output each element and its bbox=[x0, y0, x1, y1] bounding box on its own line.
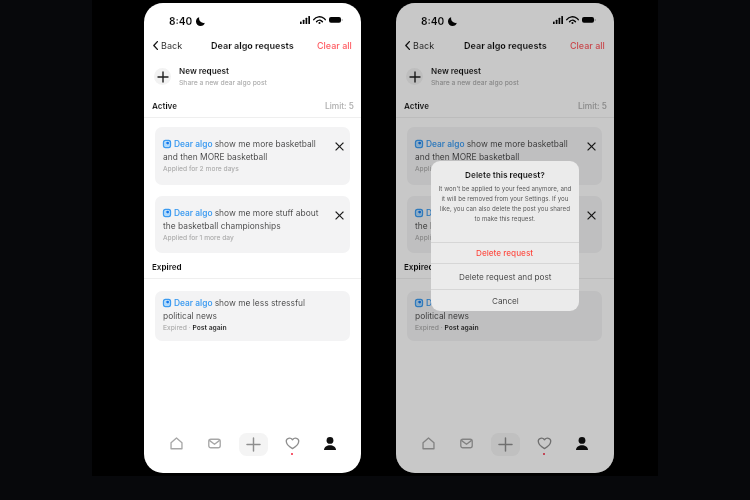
button[interactable]: New request bbox=[396, 60, 614, 92]
button[interactable]: New request bbox=[144, 60, 361, 92]
button[interactable]: Dismiss request bbox=[583, 138, 599, 154]
staticText: Dear algo show me more basketball bbox=[174, 139, 316, 149]
staticText: Back bbox=[161, 40, 183, 51]
button[interactable]: Back bbox=[144, 36, 191, 55]
staticText: Dear algo show me less stressful bbox=[426, 298, 557, 308]
button[interactable]: Messages bbox=[199, 428, 229, 458]
staticText: Back bbox=[413, 40, 435, 51]
staticText: political news bbox=[415, 311, 469, 321]
staticText: Applied for 2 more days bbox=[163, 165, 239, 173]
staticText: Dear algo show me less stressful bbox=[174, 298, 305, 308]
button[interactable]: Activity bbox=[529, 432, 559, 462]
staticText: Cancel bbox=[492, 296, 519, 306]
staticText: Dear algo show me more stuff about bbox=[426, 208, 571, 218]
button[interactable]: Dear algo show me more basketball bbox=[155, 127, 350, 185]
button[interactable]: Dismiss request bbox=[331, 138, 347, 154]
staticText: and then MORE basketball bbox=[163, 152, 268, 162]
staticText: the basketball championships bbox=[415, 221, 533, 231]
staticText: New request bbox=[179, 66, 230, 76]
button[interactable]: Dismiss request bbox=[583, 207, 599, 223]
button[interactable]: Clear all bbox=[562, 36, 614, 55]
staticText: and then MORE basketball bbox=[415, 152, 520, 162]
staticText: Dear algo show me more stuff about bbox=[174, 208, 319, 218]
staticText: Delete this request? bbox=[431, 170, 579, 180]
button[interactable]: Dear algo show me more basketball bbox=[407, 127, 602, 185]
button[interactable]: Create bbox=[490, 429, 520, 459]
staticText: Clear all bbox=[317, 40, 352, 51]
staticText: Limit: 5 bbox=[578, 101, 607, 111]
button[interactable]: Messages bbox=[451, 428, 481, 458]
staticText: 8:40 bbox=[169, 15, 193, 27]
button[interactable]: Delete request bbox=[431, 243, 579, 263]
staticText: 8:40 bbox=[421, 15, 445, 27]
staticText: Expired bbox=[152, 262, 182, 272]
staticText: Delete request and post bbox=[459, 272, 552, 282]
button[interactable]: Profile bbox=[315, 428, 345, 458]
button[interactable]: Back bbox=[396, 36, 443, 55]
staticText: Delete request bbox=[476, 248, 534, 258]
staticText: Expired · Post again bbox=[415, 324, 479, 332]
button[interactable]: Dear algo show me more stuff about bbox=[407, 196, 602, 253]
staticText: Applied for 2 more days bbox=[415, 165, 491, 173]
button[interactable]: Activity bbox=[277, 432, 307, 462]
button[interactable]: Dear algo show me less stressful bbox=[155, 291, 350, 341]
staticText: Dear algo requests bbox=[211, 40, 294, 51]
staticText: political news bbox=[163, 311, 217, 321]
staticText: Clear all bbox=[570, 40, 605, 51]
staticText: the basketball championships bbox=[163, 221, 281, 231]
button[interactable]: Cancel bbox=[431, 290, 579, 311]
button[interactable]: Create bbox=[238, 429, 268, 459]
button[interactable]: Home bbox=[161, 428, 191, 458]
button[interactable]: Delete request and post bbox=[431, 264, 579, 289]
staticText: Dear algo show me more basketball bbox=[426, 139, 568, 149]
button[interactable]: Dismiss request bbox=[331, 207, 347, 223]
staticText: Limit: 5 bbox=[325, 101, 354, 111]
staticText: Applied for 1 more day bbox=[163, 234, 234, 242]
staticText: Applied for 1 more day bbox=[415, 234, 486, 242]
staticText: Expired · Post again bbox=[163, 324, 227, 332]
staticText: New request bbox=[431, 66, 482, 76]
staticText: Share a new dear algo post bbox=[431, 78, 519, 86]
staticText: It won't be applied to your feed anymore… bbox=[437, 185, 573, 222]
button[interactable]: Dear algo show me more stuff about bbox=[155, 196, 350, 253]
button[interactable]: Dear algo show me less stressful bbox=[407, 291, 602, 341]
staticText: Dear algo requests bbox=[464, 40, 547, 51]
staticText: Active bbox=[404, 101, 430, 111]
button[interactable]: Home bbox=[413, 428, 443, 458]
staticText: Share a new dear algo post bbox=[179, 78, 267, 86]
staticText: Active bbox=[152, 101, 178, 111]
staticText: Expired bbox=[404, 262, 434, 272]
button[interactable]: Clear all bbox=[309, 36, 361, 55]
button[interactable]: Profile bbox=[567, 428, 597, 458]
